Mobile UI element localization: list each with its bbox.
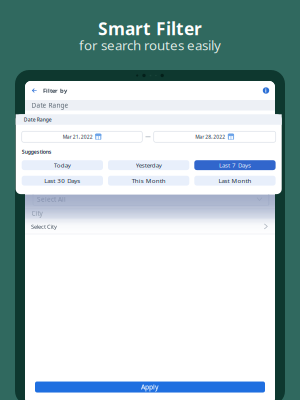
button[interactable]: Select All [33,193,269,205]
staticText: i [265,87,267,94]
staticText: Mar 21, 2022 [63,133,93,140]
button[interactable]: This Month [108,176,189,186]
staticText: This Month [132,177,166,185]
staticText: Last Month [218,177,251,185]
staticText: for search routes easily [79,36,221,54]
staticText: Select All [37,195,66,203]
staticText: Date Range [31,101,68,109]
button[interactable]: Last 30 Days [22,176,103,186]
staticText: Last 7 Days [219,161,251,169]
button[interactable]: Information [259,81,273,100]
staticText: Date Range [24,116,52,123]
button[interactable]: Apply [35,381,265,392]
staticText: Last 30 Days [44,177,80,185]
staticText: Yesterday [136,161,162,169]
staticText: Filter by [43,87,67,94]
button[interactable]: Last 7 Days [194,160,276,170]
button[interactable]: Select City [25,219,275,234]
staticText: Apply [141,383,159,391]
button[interactable]: Last Month [194,176,276,186]
staticText: Smart Filter [98,17,202,40]
staticText: Suggestions [22,148,52,155]
button[interactable]: Yesterday [108,160,189,170]
button[interactable]: Back [25,81,41,100]
staticText: Mar 28, 2022 [195,133,225,140]
staticText: Today [54,161,71,169]
staticText: Select City [31,223,57,230]
staticText: City [31,209,42,217]
button[interactable]: Today [22,160,103,170]
